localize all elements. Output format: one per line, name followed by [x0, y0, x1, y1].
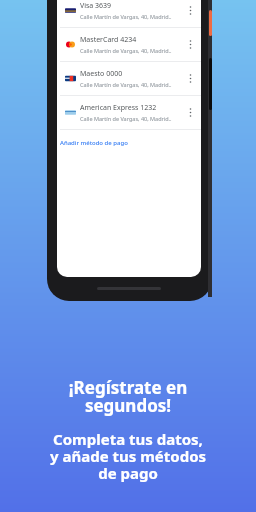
staticText: Completa tus datos, y añade tus métodos …: [8, 429, 248, 484]
button[interactable]: Visa 3639: [57, 0, 201, 27]
staticText: Maesto 0000: [80, 69, 123, 79]
button[interactable]: More options: [182, 28, 198, 61]
staticText: Añadir método de pago: [60, 139, 128, 147]
button[interactable]: More options: [182, 62, 198, 95]
button[interactable]: More options: [182, 96, 198, 129]
staticText: MasterCard 4234: [80, 35, 137, 45]
staticText: Calle Martín de Vargas, 40, Madrid..: [80, 47, 172, 54]
staticText: Calle Martín de Vargas, 40, Madrid..: [80, 81, 172, 88]
staticText: American Express 1232: [80, 103, 157, 113]
button[interactable]: MasterCard 4234: [57, 28, 201, 61]
button[interactable]: Maesto 0000: [57, 62, 201, 95]
staticText: Calle Martín de Vargas, 40, Madrid..: [80, 13, 172, 20]
staticText: Calle Martín de Vargas, 40, Madrid..: [80, 115, 172, 122]
button[interactable]: American Express 1232: [57, 96, 201, 129]
button[interactable]: Añadir método de pago: [57, 130, 201, 156]
button[interactable]: More options: [182, 0, 198, 27]
staticText: ¡Regístrate en segundos!: [8, 376, 248, 417]
staticText: Visa 3639: [80, 1, 112, 11]
